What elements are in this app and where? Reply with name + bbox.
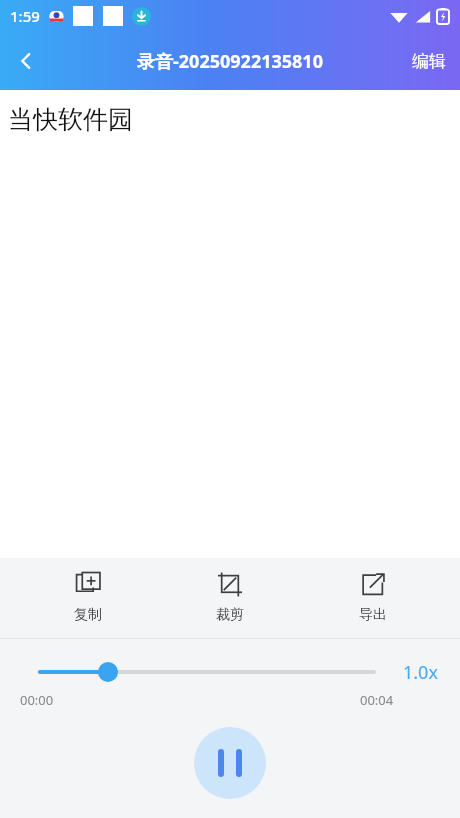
button[interactable]: Back — [0, 35, 52, 87]
button[interactable]: Crop — [175, 566, 285, 630]
staticText: 当快软件园 — [8, 104, 133, 135]
button[interactable]: 编辑 — [398, 43, 460, 80]
staticText: 导出 — [359, 606, 387, 624]
button[interactable]: Seek — [0, 659, 460, 685]
staticText: 00:00 — [20, 691, 54, 709]
staticText: 00:04 — [360, 691, 394, 709]
staticText: 复制 — [74, 606, 102, 624]
staticText: 裁剪 — [216, 606, 244, 624]
staticText: 录音-20250922135810 — [137, 49, 323, 74]
button[interactable]: Export — [318, 566, 428, 630]
button[interactable]: 1.0x — [403, 660, 438, 685]
staticText: 编辑 — [412, 51, 446, 72]
staticText: 1:59 — [10, 6, 40, 26]
button[interactable]: Pause — [194, 727, 266, 799]
button[interactable]: Copy — [33, 566, 143, 630]
